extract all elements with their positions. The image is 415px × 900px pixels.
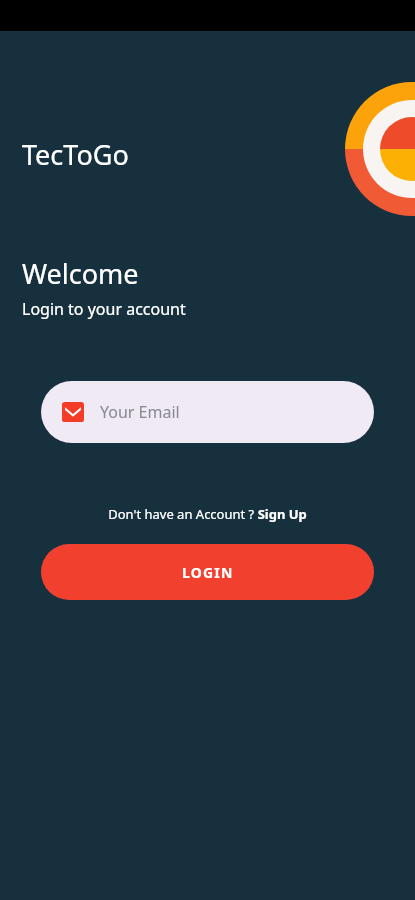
staticText: LOGIN	[182, 563, 234, 582]
staticText: TecToGo	[22, 136, 129, 173]
staticText: Login to your account	[22, 298, 186, 320]
staticText: Your Email	[100, 401, 180, 423]
staticText: Welcome	[22, 255, 139, 292]
other: Email	[62, 402, 84, 422]
button[interactable]: LOGIN	[41, 544, 374, 600]
button[interactable]: Don't have an Account ? Sign Up	[108, 505, 307, 523]
button[interactable]: Email	[41, 381, 374, 443]
